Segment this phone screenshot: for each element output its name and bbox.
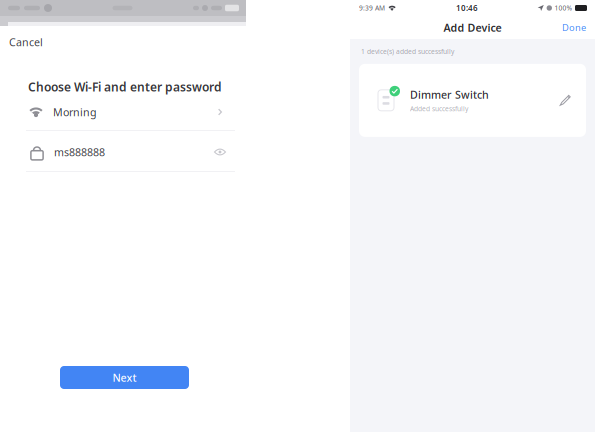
staticText: Morning <box>53 105 97 119</box>
staticText: Add Device <box>443 20 501 35</box>
button[interactable]: Next <box>60 366 189 389</box>
staticText: 9:39 AM <box>359 4 385 12</box>
button[interactable]: Done <box>553 17 595 37</box>
staticText: Done <box>562 21 586 34</box>
staticText: 1 device(s) added successfully <box>361 47 454 56</box>
staticText: ms888888 <box>54 145 105 159</box>
button[interactable]: ms888888 <box>0 137 249 167</box>
button[interactable]: Dimmer Switch <box>359 64 586 137</box>
staticText: Choose Wi-Fi and enter password <box>28 79 222 95</box>
button[interactable]: Morning <box>0 97 249 127</box>
staticText: Next <box>112 370 136 385</box>
staticText: 10:46 <box>456 3 478 13</box>
staticText: Added successfully <box>410 104 468 113</box>
staticText: Dimmer Switch <box>410 88 489 102</box>
button[interactable]: Cancel <box>0 33 80 51</box>
staticText: Cancel <box>9 35 43 49</box>
staticText: 100% <box>554 4 572 12</box>
